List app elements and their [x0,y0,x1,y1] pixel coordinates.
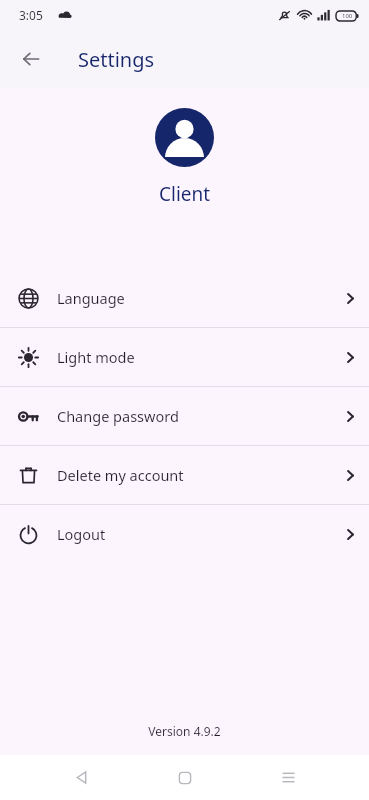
staticText: Client [159,181,211,207]
staticText: Logout [57,524,332,544]
staticText: Language [57,288,332,308]
button[interactable]: Back [58,755,104,800]
staticText: Version 4.9.2 [0,723,369,739]
staticText: Settings [78,46,155,73]
staticText: 100 [342,12,353,20]
staticText: 3:05 [19,7,43,23]
button[interactable]: Language [0,269,369,327]
button[interactable]: Light mode [0,328,369,386]
staticText: Delete my account [57,465,332,485]
button[interactable]: Delete my account [0,446,369,504]
button[interactable]: Change password [0,387,369,445]
staticText: Light mode [57,347,332,367]
button[interactable]: Recent apps [265,755,311,800]
button[interactable]: Logout [0,505,369,563]
staticText: Change password [57,406,332,426]
button[interactable]: Home [162,755,208,800]
button[interactable]: Back [12,40,50,78]
